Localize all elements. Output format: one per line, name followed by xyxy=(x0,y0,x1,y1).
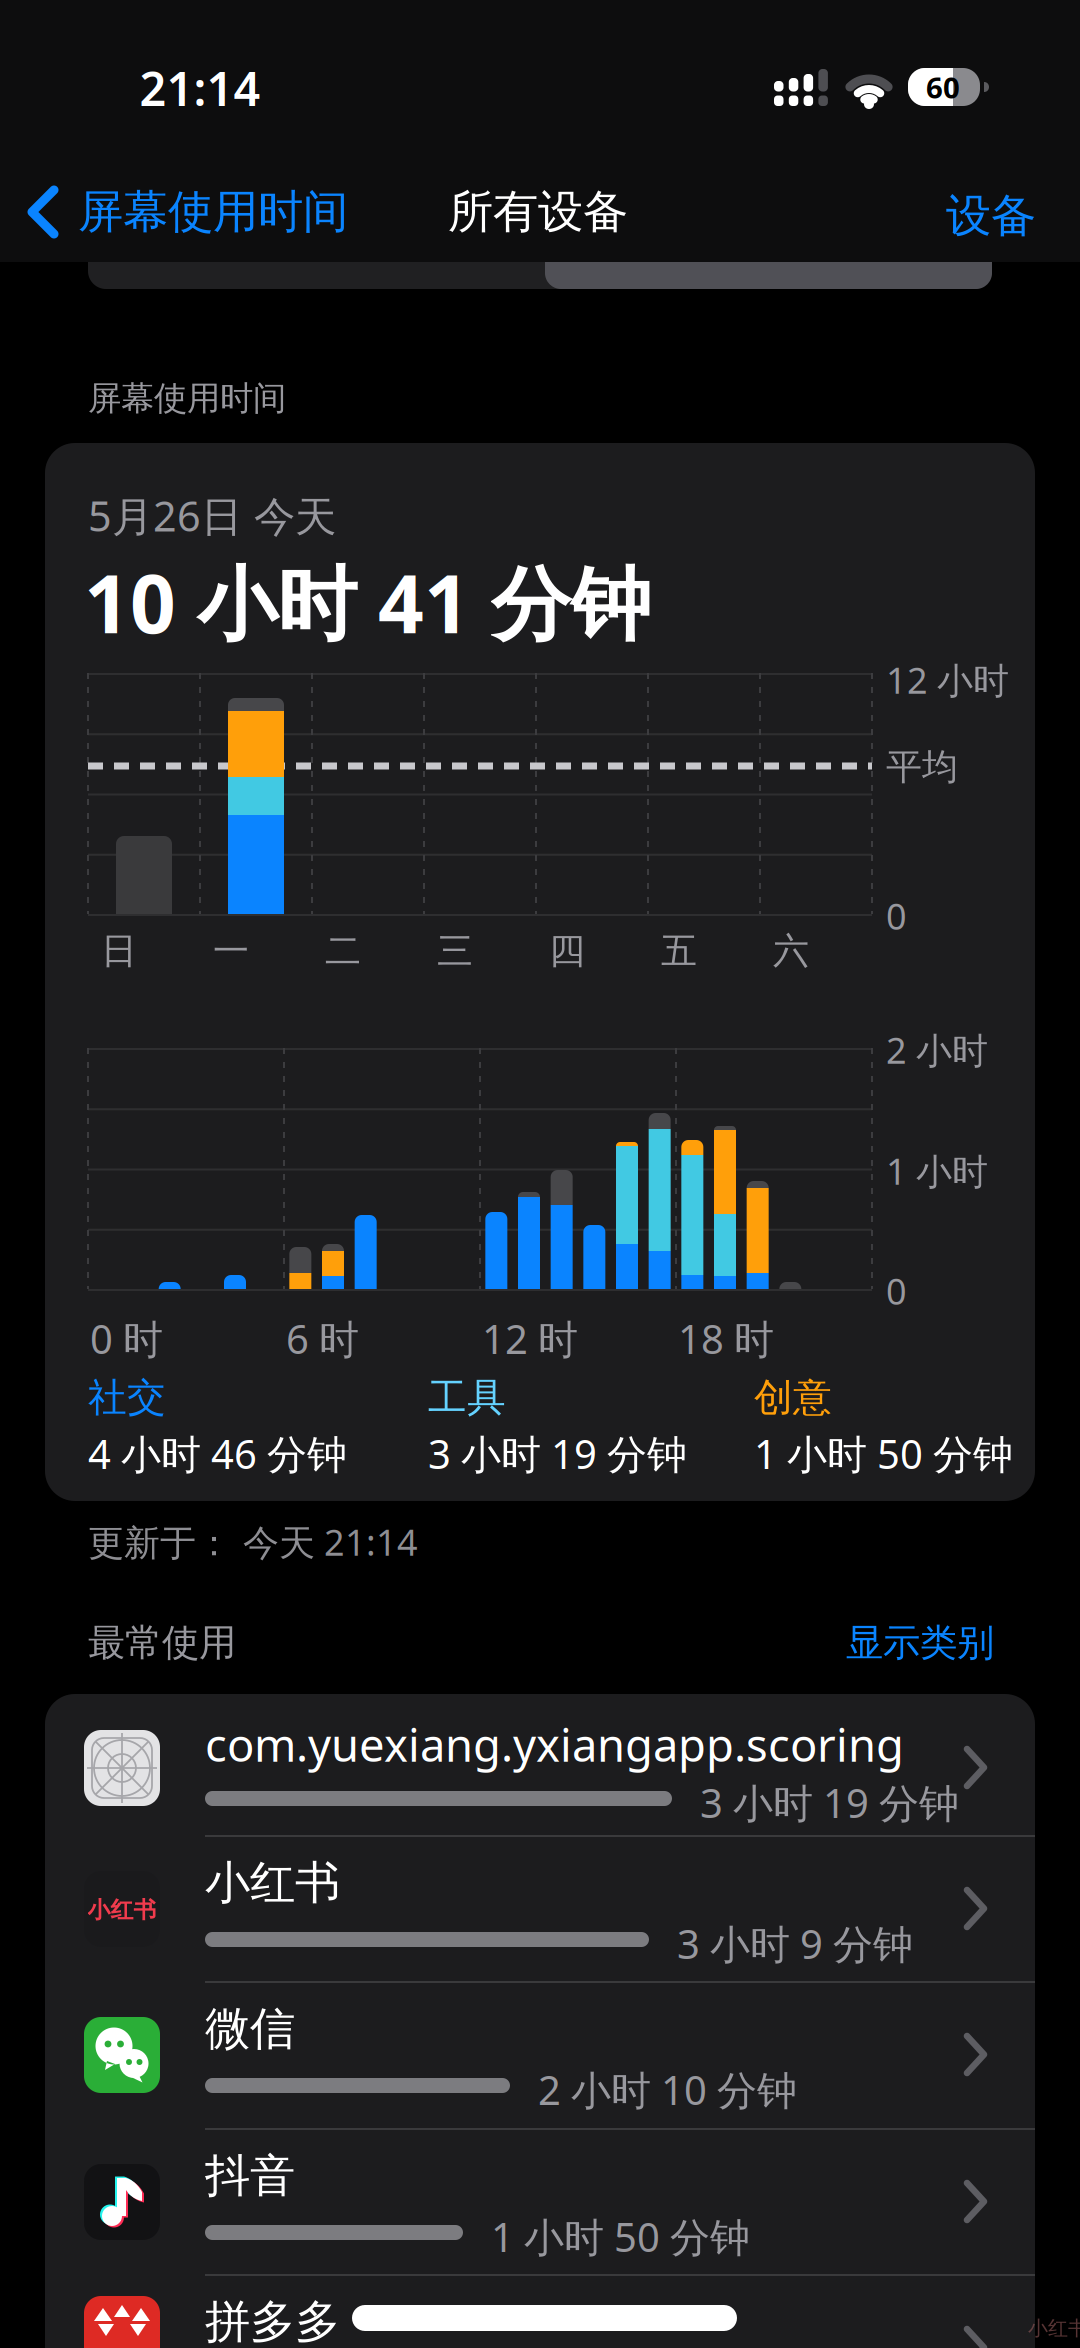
staticText: 最常使用 xyxy=(88,1620,236,1666)
staticText: 12 小时 xyxy=(886,656,1009,704)
staticText: 2 小时 10 分钟 xyxy=(538,2063,797,2116)
staticText: 屏幕使用时间 xyxy=(88,378,286,419)
staticText: 0 xyxy=(886,892,907,940)
button[interactable]: 小红书 xyxy=(45,1835,1035,1982)
staticText: 三 xyxy=(437,929,473,973)
button[interactable]: 抖音 xyxy=(45,2128,1035,2275)
staticText: 3 小时 19 分钟 xyxy=(700,1776,959,1829)
staticText: 创意 xyxy=(754,1374,832,1421)
staticText: 1 小时 50 分钟 xyxy=(754,1427,1013,1480)
staticText: 抖音 xyxy=(205,2148,295,2204)
staticText: 60 xyxy=(926,67,960,106)
staticText: 四 xyxy=(549,929,585,973)
staticText: 6 时 xyxy=(286,1312,359,1365)
staticText: 10 小时 41 分钟 xyxy=(84,549,651,655)
staticText: 1 小时 xyxy=(886,1147,988,1195)
staticText: 2 小时 xyxy=(886,1026,988,1074)
staticText: 设备 xyxy=(946,188,1036,244)
staticText: 所有设备 xyxy=(448,184,628,240)
staticText: com.yuexiang.yxiangapp.scoring xyxy=(205,1714,904,1774)
staticText: 更新于： 今天 21:14 xyxy=(88,1518,418,1566)
staticText: 1 小时 50 分钟 xyxy=(491,2210,750,2263)
staticText: 18 时 xyxy=(678,1312,774,1365)
staticText: 五 xyxy=(661,929,697,973)
staticText: 六 xyxy=(773,929,809,973)
button[interactable]: 返回 屏幕使用时间 xyxy=(28,182,348,242)
staticText: 小红书 xyxy=(1028,2316,1080,2341)
staticText: 小红书 xyxy=(205,1855,340,1911)
staticText: 21:14 xyxy=(139,57,260,119)
button[interactable]: 设备 xyxy=(946,188,1036,244)
staticText: 微信 xyxy=(205,2001,295,2057)
staticText: 平均 xyxy=(886,745,958,789)
staticText: 3 小时 9 分钟 xyxy=(677,1917,913,1970)
staticText: 12 时 xyxy=(482,1312,578,1365)
staticText: 3 小时 19 分钟 xyxy=(428,1427,687,1480)
button[interactable]: 显示类别 xyxy=(846,1620,994,1666)
button[interactable]: 拼多多 xyxy=(45,2274,1035,2348)
staticText: 0 时 xyxy=(90,1312,163,1365)
staticText: 5月26日 今天 xyxy=(88,488,336,543)
staticText: 社交 xyxy=(88,1374,166,1421)
staticText: 小红书 xyxy=(87,1896,156,1924)
staticText: 一 xyxy=(213,929,249,973)
staticText: 屏幕使用时间 xyxy=(78,184,348,240)
staticText: 二 xyxy=(325,929,361,973)
staticText: 拼多多 xyxy=(205,2294,340,2348)
staticText: 工具 xyxy=(428,1374,506,1421)
button[interactable]: 微信 xyxy=(45,1981,1035,2128)
staticText: 4 小时 46 分钟 xyxy=(88,1427,347,1480)
staticText: 日 xyxy=(101,929,137,973)
button[interactable]: com.yuexiang.yxiangapp.scoring xyxy=(45,1694,1035,1841)
staticText: 显示类别 xyxy=(846,1620,994,1666)
staticText: 0 xyxy=(886,1267,907,1315)
